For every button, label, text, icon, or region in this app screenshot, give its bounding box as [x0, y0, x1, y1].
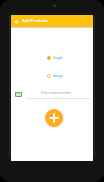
button[interactable]: Single	[47, 55, 63, 60]
staticText: Single	[53, 55, 63, 60]
staticText: Range	[53, 73, 64, 78]
button[interactable]: Range	[47, 73, 64, 78]
button[interactable]	[15, 92, 22, 97]
staticText: Add Products	[22, 18, 48, 23]
button[interactable]	[45, 109, 63, 127]
staticText: Enter brand number	[41, 91, 72, 95]
button[interactable]	[13, 18, 20, 25]
